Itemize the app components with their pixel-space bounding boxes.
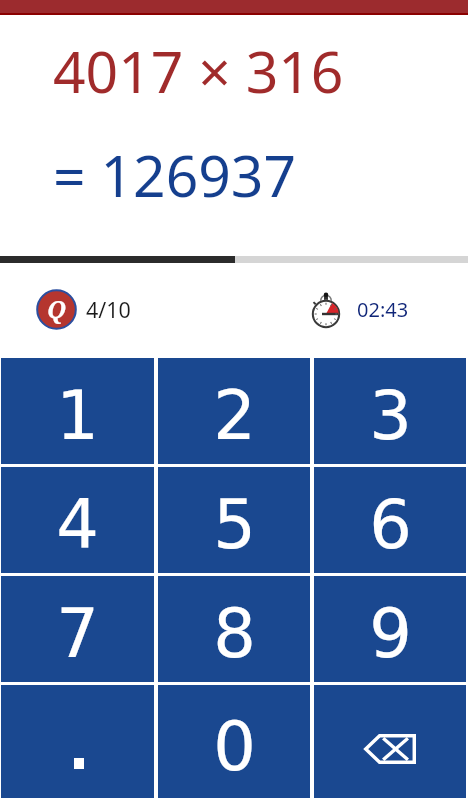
button[interactable]: . xyxy=(1,685,154,798)
staticText: 3 xyxy=(369,377,412,455)
button[interactable]: 9 xyxy=(314,576,466,682)
button[interactable]: 3 xyxy=(314,358,466,464)
button[interactable]: 1 xyxy=(1,358,154,464)
staticText: 2 xyxy=(213,377,256,455)
button[interactable]: 7 xyxy=(1,576,154,682)
button[interactable]: 2 xyxy=(158,358,310,464)
staticText: 4017 × 316 xyxy=(53,32,344,110)
staticText: 0 xyxy=(213,708,256,786)
staticText: 1 xyxy=(56,377,99,455)
staticText: 9 xyxy=(369,595,412,673)
button[interactable]: Q xyxy=(36,289,131,330)
button[interactable]: 4 xyxy=(1,467,154,573)
staticText: 4/10 xyxy=(86,295,131,324)
staticText: = 126937 xyxy=(53,136,297,214)
button[interactable]: 8 xyxy=(158,576,310,682)
staticText: 8 xyxy=(213,595,256,673)
staticText: 4 xyxy=(56,486,99,564)
button[interactable]: 0 xyxy=(158,685,310,798)
other: Timer xyxy=(311,291,341,329)
button[interactable]: Backspace xyxy=(314,685,466,798)
staticText: Q xyxy=(47,292,66,325)
staticText: 6 xyxy=(369,486,412,564)
button[interactable]: Timer xyxy=(311,289,409,330)
staticText: 5 xyxy=(213,486,256,564)
staticText: 02:43 xyxy=(357,296,409,323)
button[interactable]: 5 xyxy=(158,467,310,573)
button[interactable]: 6 xyxy=(314,467,466,573)
staticText: 7 xyxy=(56,595,99,673)
